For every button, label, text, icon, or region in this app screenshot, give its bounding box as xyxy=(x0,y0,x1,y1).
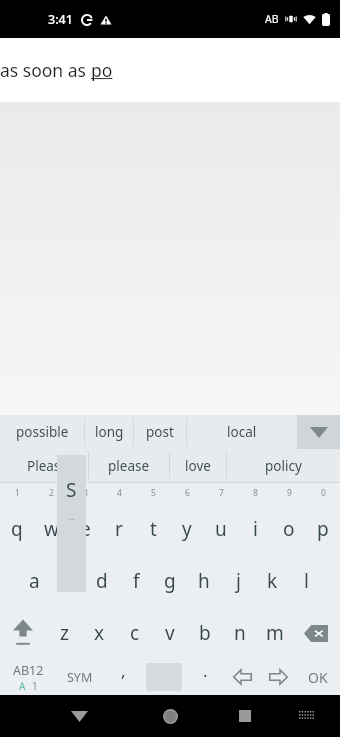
button[interactable]: Backspace xyxy=(292,607,340,659)
button[interactable]: g xyxy=(153,555,187,607)
button[interactable]: s xyxy=(51,555,85,607)
button[interactable]: n xyxy=(222,607,257,659)
staticText: z xyxy=(60,620,69,646)
button[interactable]: Move cursor right xyxy=(260,659,296,695)
button[interactable]: Shift xyxy=(0,607,46,659)
staticText: q xyxy=(11,516,23,542)
button[interactable]: v xyxy=(152,607,187,659)
staticText: SYM xyxy=(67,669,93,686)
staticText: 8 xyxy=(253,487,258,499)
button[interactable]: l xyxy=(289,555,323,607)
button[interactable]: q xyxy=(0,503,34,555)
staticText: 5 xyxy=(151,487,156,499)
button[interactable]: as soon as xyxy=(0,38,340,102)
button[interactable]: z xyxy=(46,607,82,659)
button[interactable]: c xyxy=(117,607,152,659)
button[interactable]: love xyxy=(170,449,226,482)
staticText: AB12 xyxy=(13,662,44,679)
button[interactable]: o xyxy=(272,503,306,555)
button[interactable]: f xyxy=(119,555,153,607)
button[interactable]: OK xyxy=(296,659,340,695)
button[interactable]: Back xyxy=(62,699,96,733)
staticText: policy xyxy=(265,457,302,475)
staticText: j xyxy=(236,568,241,594)
button[interactable]: Pleas xyxy=(0,449,88,482)
button[interactable]: Switch input mode xyxy=(0,659,56,695)
button[interactable]: please xyxy=(89,449,169,482)
staticText: s xyxy=(63,568,73,594)
staticText: . xyxy=(203,659,208,682)
staticText: please xyxy=(108,457,150,475)
staticText: 7 xyxy=(219,487,224,499)
button[interactable]: t xyxy=(136,503,170,555)
staticText: love xyxy=(185,457,211,475)
staticText: h xyxy=(198,568,210,594)
staticText: i xyxy=(253,516,258,542)
staticText: post xyxy=(146,423,174,441)
staticText: Pleas xyxy=(27,457,61,475)
staticText: 6 xyxy=(185,487,190,499)
button[interactable]: , xyxy=(104,659,142,695)
staticText: ... xyxy=(69,513,75,523)
button[interactable]: r xyxy=(102,503,136,555)
staticText: AB xyxy=(265,12,279,26)
staticText: local xyxy=(227,423,257,441)
staticText: w xyxy=(44,516,59,542)
staticText: y xyxy=(182,516,192,542)
button[interactable]: possible xyxy=(0,415,84,449)
staticText: o xyxy=(283,516,295,542)
button[interactable]: h xyxy=(187,555,221,607)
button[interactable]: i xyxy=(238,503,272,555)
button[interactable]: . xyxy=(186,659,224,695)
staticText: n xyxy=(234,620,246,646)
staticText: m xyxy=(266,620,284,646)
staticText: d xyxy=(96,568,108,594)
staticText: OK xyxy=(308,668,328,687)
staticText: e xyxy=(80,516,91,542)
staticText: v xyxy=(165,620,175,646)
button[interactable]: Switch keyboard xyxy=(292,701,322,731)
staticText: 3 xyxy=(83,487,88,499)
staticText: g xyxy=(164,568,176,594)
button[interactable]: k xyxy=(255,555,289,607)
staticText: 3:41 xyxy=(48,11,73,28)
button[interactable]: a xyxy=(17,555,51,607)
staticText: l xyxy=(304,568,309,594)
staticText: A xyxy=(19,679,26,693)
staticText: , xyxy=(121,659,126,682)
button[interactable]: local xyxy=(187,415,297,449)
button[interactable]: SYM xyxy=(56,659,104,695)
button[interactable]: j xyxy=(221,555,255,607)
button[interactable]: post xyxy=(134,415,186,449)
staticText: as soon as xyxy=(0,58,91,82)
button[interactable]: u xyxy=(204,503,238,555)
button[interactable]: More suggestions xyxy=(297,415,340,449)
staticText: 4 xyxy=(117,487,122,499)
button[interactable]: x xyxy=(82,607,117,659)
button[interactable]: e xyxy=(68,503,102,555)
button[interactable]: Recent apps xyxy=(228,699,262,733)
staticText: u xyxy=(215,516,227,542)
button[interactable]: Move cursor left xyxy=(224,659,260,695)
staticText: r xyxy=(115,516,123,542)
button[interactable]: y xyxy=(170,503,204,555)
button[interactable]: p xyxy=(306,503,340,555)
staticText: 0 xyxy=(321,487,326,499)
button[interactable]: long xyxy=(85,415,133,449)
staticText: long xyxy=(95,423,124,441)
button[interactable]: b xyxy=(187,607,222,659)
staticText: 1 xyxy=(32,679,38,693)
button[interactable]: m xyxy=(257,607,292,659)
button[interactable]: Home xyxy=(153,699,187,733)
staticText: b xyxy=(199,620,211,646)
button[interactable]: d xyxy=(85,555,119,607)
staticText: f xyxy=(133,568,140,594)
staticText: a xyxy=(29,568,40,594)
button[interactable]: policy xyxy=(227,449,339,482)
staticText: possible xyxy=(16,423,69,441)
button[interactable]: w xyxy=(34,503,68,555)
staticText: t xyxy=(150,516,157,542)
staticText: 1 xyxy=(15,487,20,499)
